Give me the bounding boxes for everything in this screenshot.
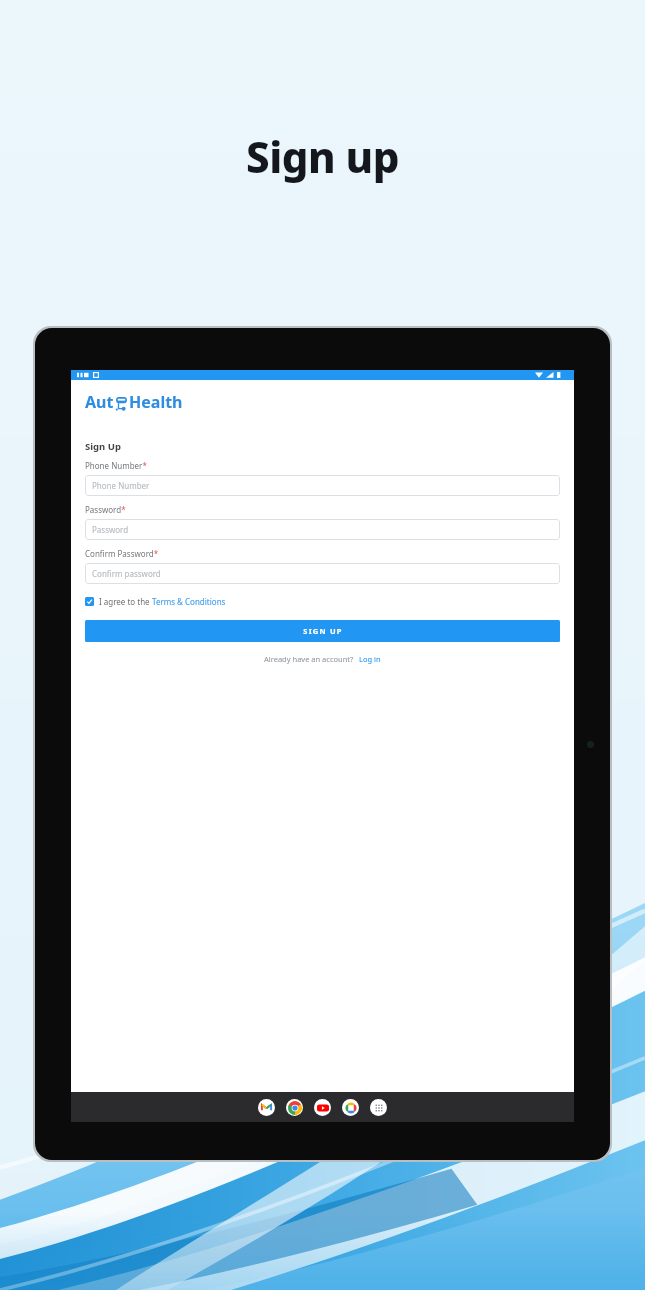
button[interactable]: Password [85, 519, 560, 540]
staticText: Confirm Password* [85, 548, 159, 559]
button[interactable]: SIGN UP [85, 620, 560, 642]
staticText: SIGN UP [303, 626, 343, 636]
button[interactable]: I agree to the [85, 596, 226, 607]
button[interactable]: All apps [370, 1099, 387, 1116]
button[interactable]: Terms & Conditions [152, 596, 226, 607]
button[interactable]: Google Photos [342, 1099, 359, 1116]
staticText: Aut [85, 391, 114, 413]
button[interactable]: YouTube [314, 1099, 331, 1116]
button[interactable]: Already have an account? [264, 654, 381, 664]
button[interactable]: Phone Number [85, 475, 560, 496]
button[interactable]: Chrome [286, 1099, 303, 1116]
button[interactable]: Confirm password [85, 563, 560, 584]
button[interactable]: Gmail [258, 1099, 275, 1116]
staticText: Phone Number [92, 480, 150, 491]
staticText: Sign up [246, 128, 399, 185]
staticText: Health [129, 391, 183, 413]
staticText: Confirm password [92, 568, 161, 579]
staticText: Log in [359, 654, 381, 664]
staticText: Sign Up [85, 440, 121, 453]
staticText: Password [92, 524, 129, 535]
staticText: Already have an account? [264, 654, 354, 664]
staticText: Phone Number* [85, 460, 147, 471]
staticText: I agree to the [99, 596, 152, 607]
staticText: Password* [85, 504, 126, 515]
